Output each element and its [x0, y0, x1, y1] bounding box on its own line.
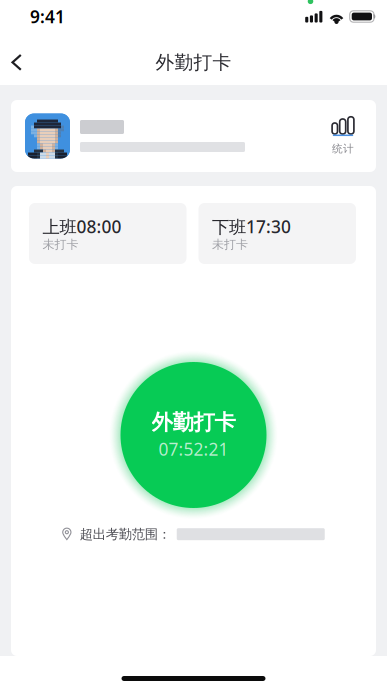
staticText: 未打卡	[212, 237, 248, 252]
staticText: 07:52:21	[158, 438, 228, 461]
button[interactable]: 外勤打卡	[120, 362, 266, 508]
staticText: 外勤打卡	[151, 409, 235, 436]
staticText: 上班08:00	[42, 215, 121, 238]
button[interactable]: Back	[0, 38, 37, 80]
staticText: 外勤打卡	[155, 51, 231, 74]
staticText: 9:41	[30, 5, 65, 28]
button[interactable]: 统计	[332, 117, 354, 155]
staticText: 未打卡	[42, 237, 78, 252]
staticText: 超出考勤范围：	[80, 526, 171, 542]
staticText: 统计	[332, 142, 354, 155]
staticText: 下班17:30	[212, 215, 291, 238]
